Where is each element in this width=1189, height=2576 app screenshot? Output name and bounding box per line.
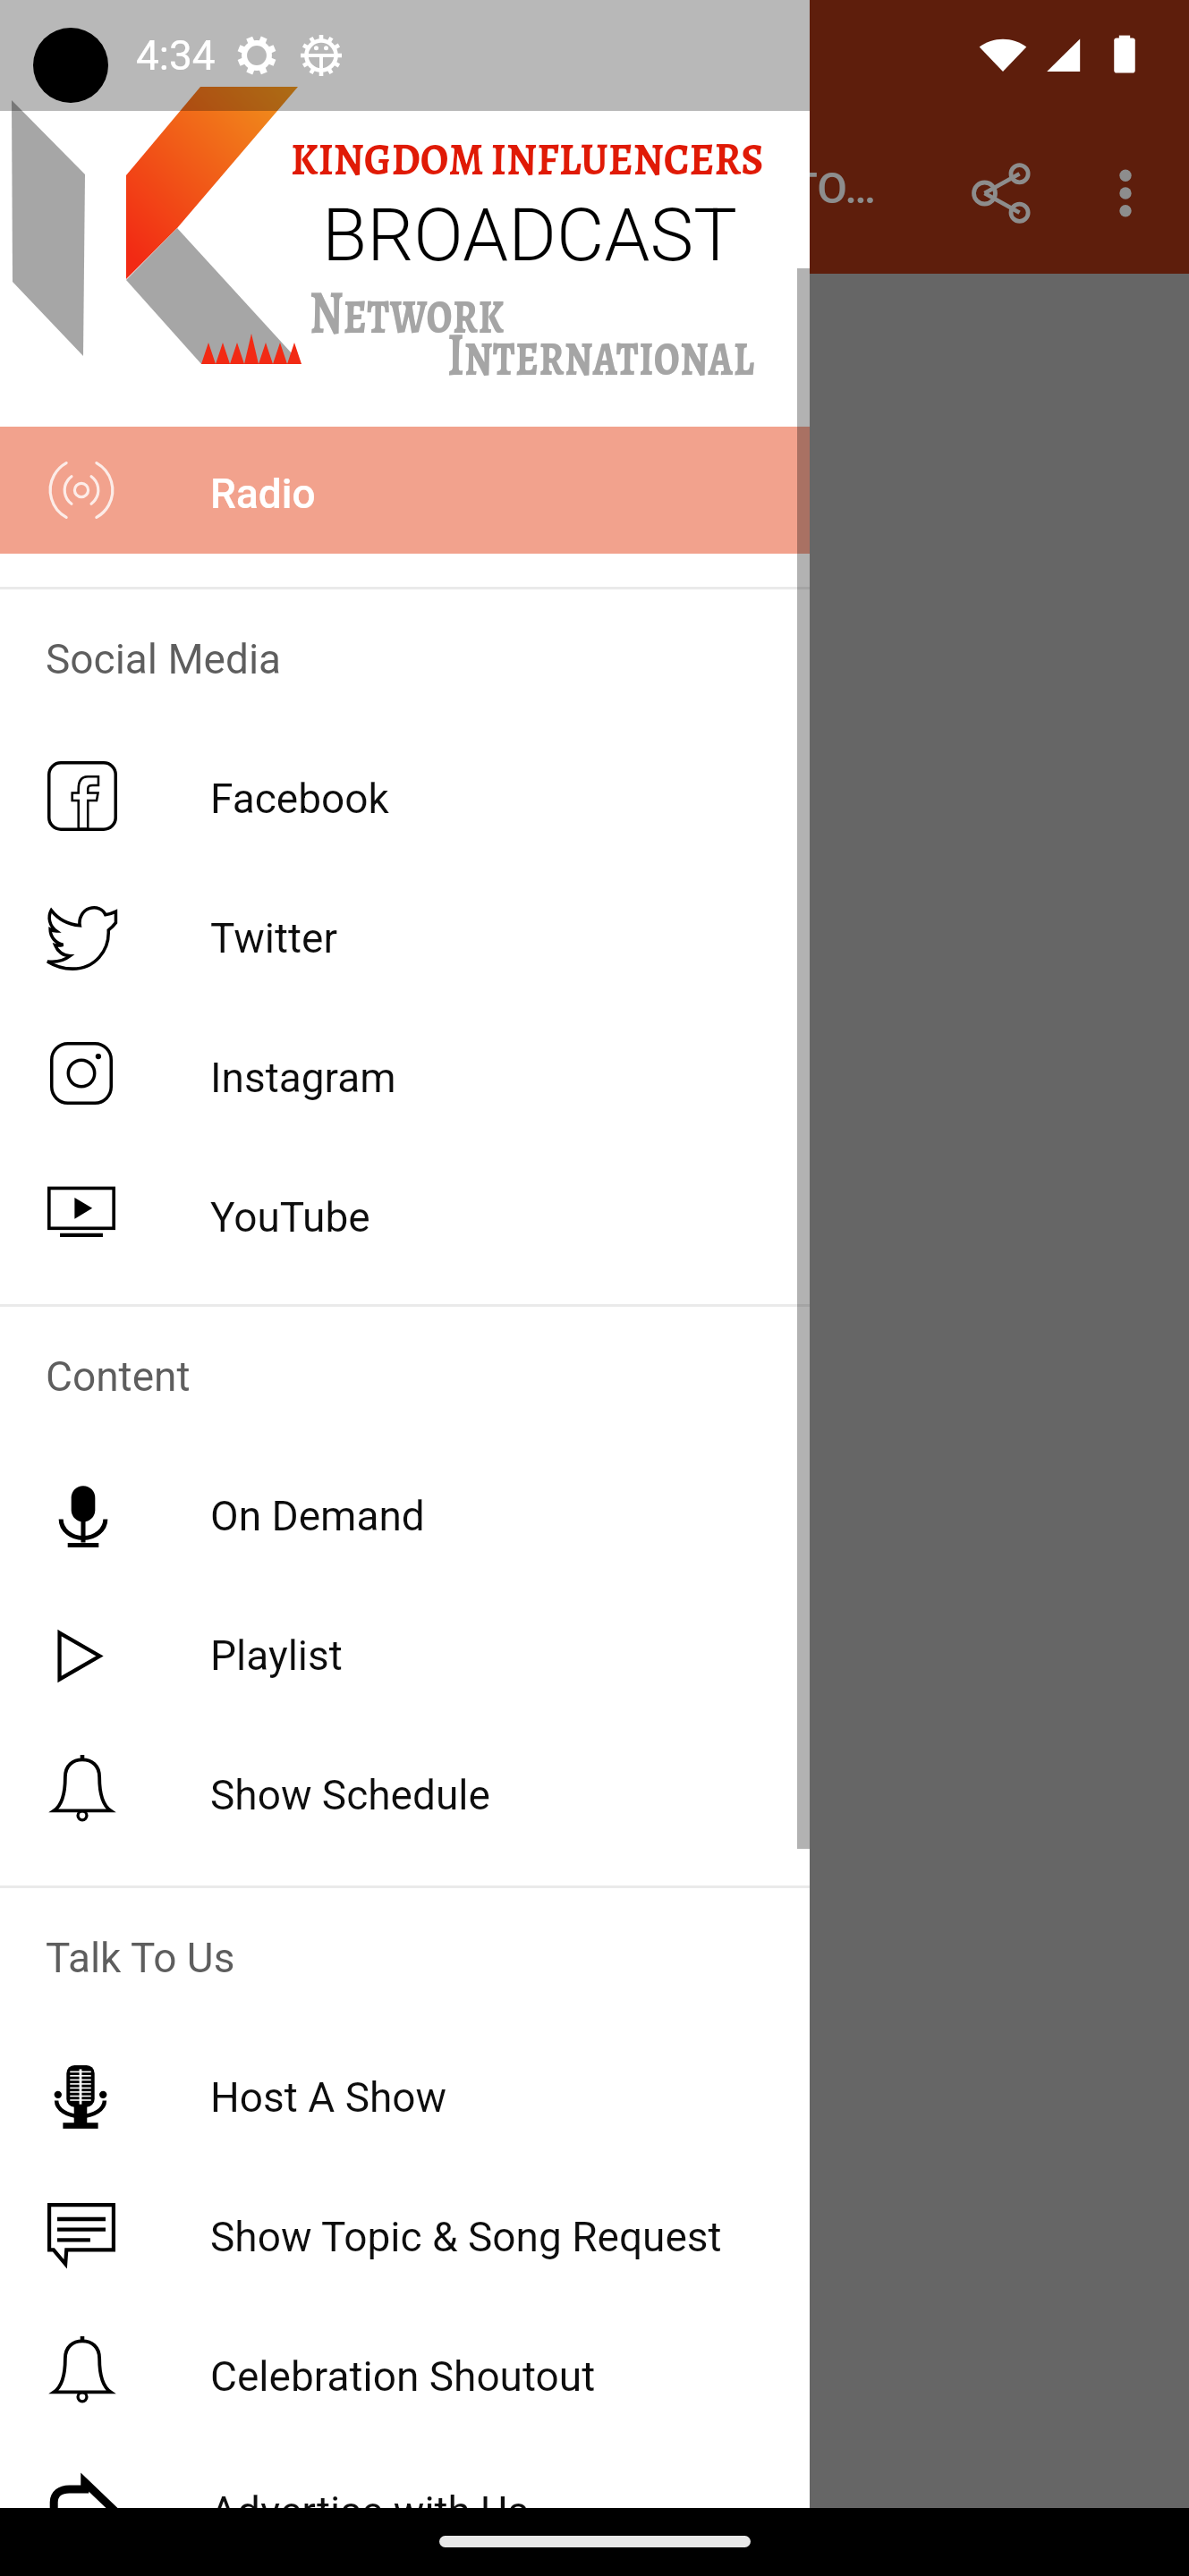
staticText: BROADCAST: [322, 192, 737, 278]
button[interactable]: Instagram: [0, 1008, 810, 1148]
other: Battery: [1100, 30, 1150, 80]
staticText: Host A Show: [210, 2073, 447, 2122]
staticText: Talk To Us: [46, 1934, 235, 1982]
button[interactable]: Show Topic & Song Request: [0, 2167, 810, 2307]
staticText: On Demand: [210, 1492, 425, 1540]
other: Wi-Fi: [978, 30, 1028, 80]
staticText: 4:34: [136, 31, 216, 80]
staticText: Celebration Shoutout: [210, 2352, 596, 2401]
staticText: TO…: [791, 163, 877, 214]
staticText: Advertise with Us: [210, 2487, 529, 2536]
button[interactable]: YouTube: [0, 1148, 810, 1287]
staticText: YouTube: [210, 1193, 370, 1241]
button[interactable]: Show Schedule: [0, 1725, 810, 1865]
staticText: Social Media: [46, 635, 282, 683]
staticText: International: [447, 313, 755, 396]
button[interactable]: Share: [945, 135, 1061, 251]
staticText: Show Topic & Song Request: [210, 2213, 722, 2261]
staticText: Content: [46, 1352, 191, 1401]
button[interactable]: Close navigation drawer: [810, 0, 1189, 2576]
staticText: Facebook: [210, 775, 389, 823]
other: Status icon: [235, 34, 278, 77]
staticText: Instagram: [210, 1054, 396, 1102]
staticText: Twitter: [210, 914, 337, 962]
other: Signal: [1037, 30, 1087, 80]
button[interactable]: On Demand: [0, 1446, 810, 1586]
button[interactable]: Twitter: [0, 869, 810, 1008]
button[interactable]: Host A Show: [0, 2028, 810, 2167]
staticText: KINGDOM INFLUENCERS: [291, 129, 764, 190]
staticText: Radio: [210, 470, 316, 518]
button[interactable]: Facebook: [0, 729, 810, 869]
button[interactable]: Radio: [0, 427, 810, 554]
other: Status icon: [301, 35, 342, 76]
staticText: Playlist: [210, 1631, 343, 1680]
button[interactable]: Playlist: [0, 1586, 810, 1725]
button[interactable]: Advertise with Us: [0, 2446, 810, 2576]
staticText: Show Schedule: [210, 1771, 490, 1819]
button[interactable]: Celebration Shoutout: [0, 2307, 810, 2446]
button[interactable]: More options: [1067, 135, 1184, 251]
staticText: Network: [310, 271, 505, 354]
